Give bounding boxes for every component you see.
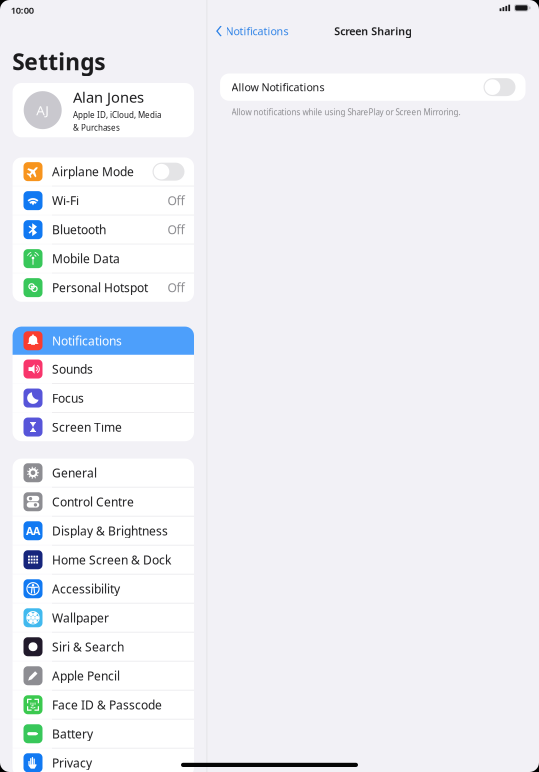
button[interactable]: Notifications bbox=[13, 327, 194, 355]
button[interactable]: Mobile Data bbox=[13, 244, 194, 273]
button[interactable]: Apple Pencil bbox=[13, 662, 194, 690]
button[interactable]: Personal Hotspot bbox=[13, 273, 194, 302]
staticText: Off bbox=[167, 193, 184, 209]
button[interactable]: Battery bbox=[13, 720, 194, 748]
staticText: General bbox=[52, 465, 97, 481]
staticText: Control Centre bbox=[52, 494, 134, 510]
staticText: Screen Time bbox=[52, 419, 122, 435]
staticText: Bluetooth bbox=[52, 222, 106, 238]
staticText: AJ bbox=[36, 101, 49, 119]
staticText: Wallpaper bbox=[52, 610, 109, 626]
staticText: Notifications bbox=[225, 24, 288, 38]
button[interactable]: Wi-Fi bbox=[13, 186, 194, 215]
button[interactable]: Screen Time bbox=[13, 413, 194, 441]
button[interactable]: Privacy bbox=[13, 749, 194, 772]
staticText: & Purchases bbox=[73, 122, 120, 133]
staticText: Sounds bbox=[52, 361, 93, 377]
button[interactable]: Focus bbox=[13, 384, 194, 412]
button[interactable]: Notifications bbox=[208, 19, 296, 43]
button[interactable]: Siri & Search bbox=[13, 633, 194, 661]
staticText: Screen Sharing bbox=[334, 24, 412, 38]
button[interactable]: Sounds bbox=[13, 355, 194, 383]
button[interactable]: Face ID & Passcode bbox=[13, 691, 194, 719]
staticText: Wi-Fi bbox=[52, 193, 79, 209]
staticText: AA bbox=[26, 524, 40, 538]
staticText: Alan Jones bbox=[73, 87, 144, 107]
staticText: Apple Pencil bbox=[52, 668, 120, 684]
staticText: Airplane Mode bbox=[52, 164, 134, 180]
button[interactable]: AJ bbox=[13, 83, 194, 137]
staticText: Privacy bbox=[52, 755, 92, 771]
staticText: Notifications bbox=[52, 333, 122, 349]
staticText: 10:00 bbox=[11, 4, 34, 16]
staticText: Focus bbox=[52, 390, 84, 406]
button[interactable]: Airplane Mode bbox=[13, 157, 194, 186]
button[interactable]: Home Screen & Dock bbox=[13, 546, 194, 574]
button[interactable]: Wallpaper bbox=[13, 604, 194, 632]
staticText: Accessibility bbox=[52, 581, 120, 597]
staticText: Mobile Data bbox=[52, 251, 120, 267]
staticText: Battery bbox=[52, 726, 93, 742]
staticText: Off bbox=[167, 222, 184, 238]
button[interactable]: Allow Notifications bbox=[220, 73, 525, 101]
staticText: Off bbox=[167, 280, 184, 296]
staticText: Personal Hotspot bbox=[52, 280, 148, 296]
button[interactable]: Control Centre bbox=[13, 488, 194, 516]
button[interactable]: Bluetooth bbox=[13, 215, 194, 244]
staticText: Display & Brightness bbox=[52, 523, 168, 539]
button[interactable]: General bbox=[13, 459, 194, 487]
button[interactable]: Accessibility bbox=[13, 575, 194, 603]
staticText: Home Screen & Dock bbox=[52, 552, 171, 568]
button[interactable]: AA bbox=[13, 517, 194, 545]
staticText: Allow notifications while using SharePla… bbox=[232, 107, 461, 117]
staticText: Face ID & Passcode bbox=[52, 697, 162, 713]
staticText: Settings bbox=[12, 46, 105, 76]
staticText: Siri & Search bbox=[52, 639, 124, 655]
staticText: Allow Notifications bbox=[232, 80, 325, 94]
staticText: Apple ID, iCloud, Media bbox=[73, 110, 161, 120]
